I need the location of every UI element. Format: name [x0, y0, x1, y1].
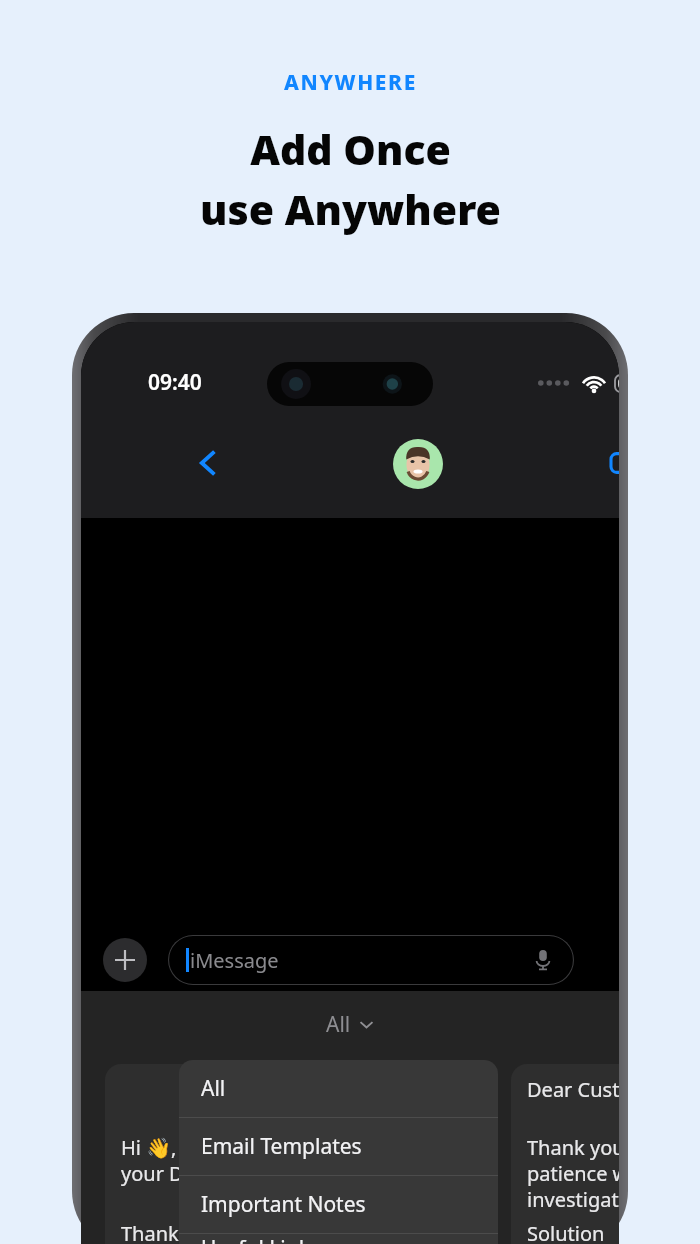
button[interactable]: Contact avatar [393, 439, 443, 489]
staticText: All [326, 1010, 351, 1039]
staticText: Thank you for patience while investigati… [527, 1134, 619, 1213]
staticText: Hi 👋, thanks for your Detailed [121, 1134, 278, 1187]
button[interactable]: All [179, 1060, 498, 1117]
staticText: Useful Links [201, 1234, 321, 1244]
staticText: Thank [121, 1220, 179, 1244]
staticText: Important Notes [201, 1190, 366, 1219]
staticText: 09:40 [148, 368, 202, 397]
button[interactable]: FaceTime video call [601, 435, 619, 491]
button[interactable]: Important Notes [179, 1176, 498, 1233]
button[interactable]: Hi 👋, thanks for your Detailed [105, 1064, 305, 1244]
staticText: Dear Customer, [527, 1076, 619, 1103]
button[interactable]: Dictate [526, 943, 560, 977]
button[interactable]: Dear Customer, [511, 1064, 619, 1244]
button[interactable]: Useful Links [179, 1234, 498, 1244]
staticText: ANYWHERE [284, 68, 417, 97]
staticText: use Anywhere [200, 181, 501, 237]
button[interactable]: Back [181, 435, 237, 491]
staticText: Solution [527, 1220, 605, 1244]
staticText: Add Once [250, 121, 451, 177]
staticText: Email Templates [201, 1132, 362, 1161]
button[interactable]: iMessage [168, 935, 574, 985]
button[interactable]: Add attachment [103, 938, 147, 982]
button[interactable]: Email Templates [179, 1118, 498, 1175]
staticText: All [201, 1074, 226, 1103]
button[interactable]: All [326, 1010, 374, 1039]
staticText: iMessage [190, 947, 279, 974]
